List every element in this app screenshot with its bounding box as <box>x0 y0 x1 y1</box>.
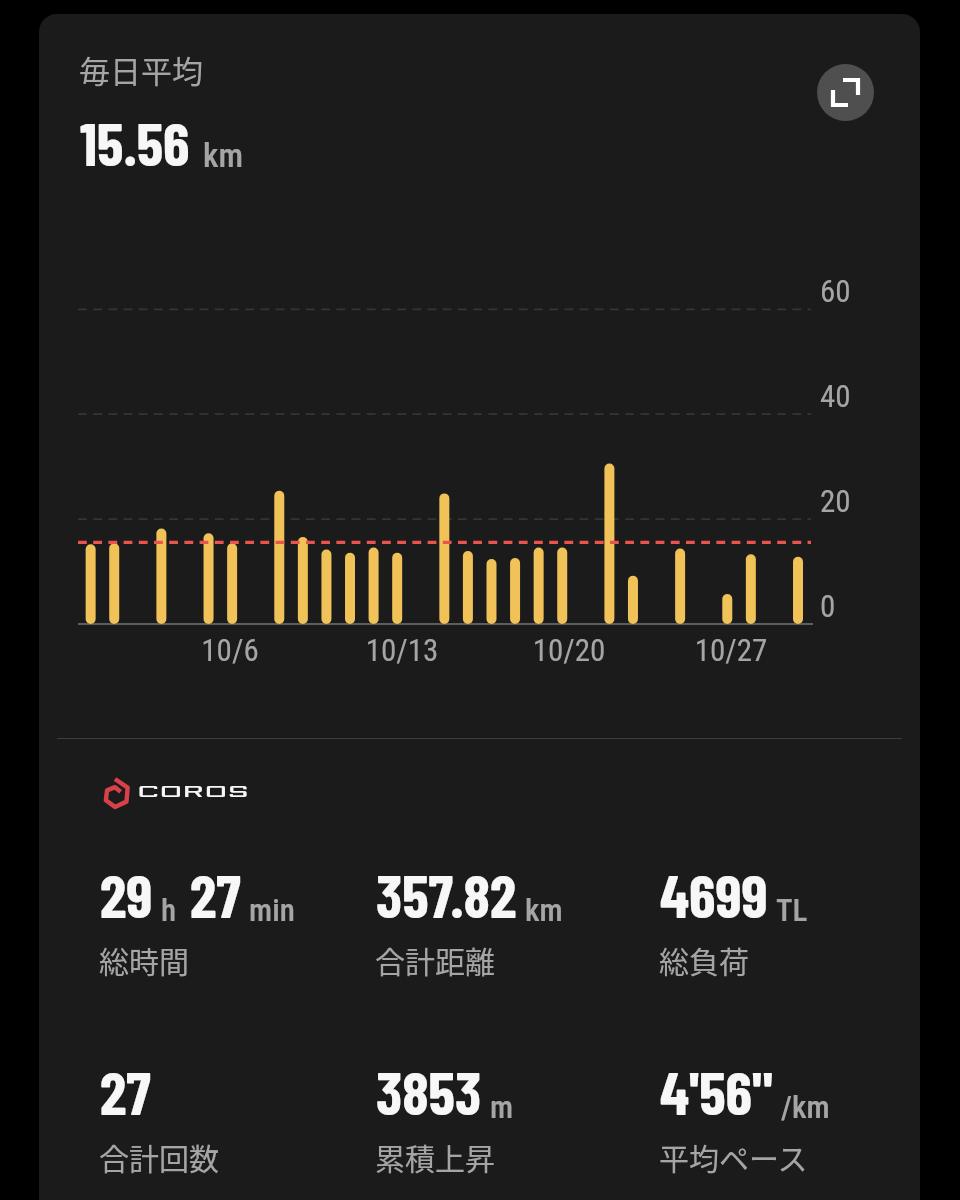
staticText: 3853 <box>376 1055 482 1127</box>
staticText: 総時間 <box>99 938 189 981</box>
staticText: km <box>203 136 244 175</box>
staticText: km <box>525 892 563 928</box>
staticText: 27 <box>100 1055 151 1127</box>
staticText: /km <box>781 1089 830 1125</box>
staticText: 20 <box>820 483 851 519</box>
staticText: m <box>490 1089 514 1125</box>
staticText: 0 <box>820 588 836 624</box>
staticText: 4699 <box>660 858 768 930</box>
staticText: 10/27 <box>681 632 781 668</box>
staticText: COROS <box>137 786 251 800</box>
button[interactable]: Expand chart <box>817 64 874 121</box>
staticText: 4'56" <box>660 1055 773 1127</box>
staticText: 累積上昇 <box>375 1135 495 1178</box>
staticText: 合計回数 <box>99 1135 219 1178</box>
staticText: 毎日平均 <box>79 47 203 92</box>
staticText: 10/6 <box>180 632 280 668</box>
staticText: min <box>249 892 295 928</box>
staticText: 60 <box>820 273 851 309</box>
staticText: 10/13 <box>352 632 452 668</box>
staticText: 平均ペース <box>659 1135 808 1178</box>
staticText: 合計距離 <box>375 938 495 981</box>
staticText: 40 <box>820 378 851 414</box>
staticText: 29 <box>100 858 153 930</box>
staticText: 357.82 <box>376 858 517 930</box>
staticText: 総負荷 <box>659 938 749 981</box>
staticText: 10/20 <box>519 632 619 668</box>
staticText: h <box>161 892 177 928</box>
staticText: TL <box>776 892 808 928</box>
staticText: 27 <box>190 858 241 930</box>
staticText: 15.56 <box>80 106 190 178</box>
